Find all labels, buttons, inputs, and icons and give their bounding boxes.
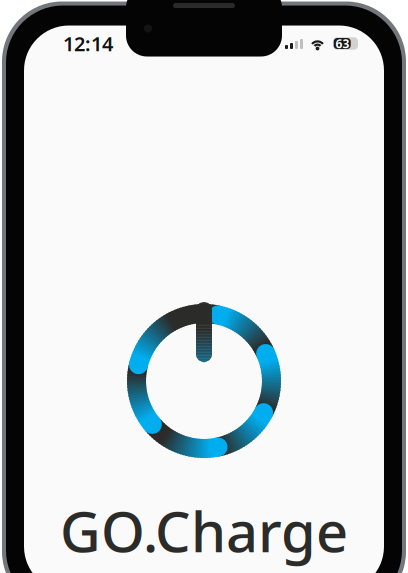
staticText: 63	[335, 35, 349, 51]
staticText: GO.Charge	[60, 493, 348, 568]
staticText: 12:14	[63, 30, 113, 57]
